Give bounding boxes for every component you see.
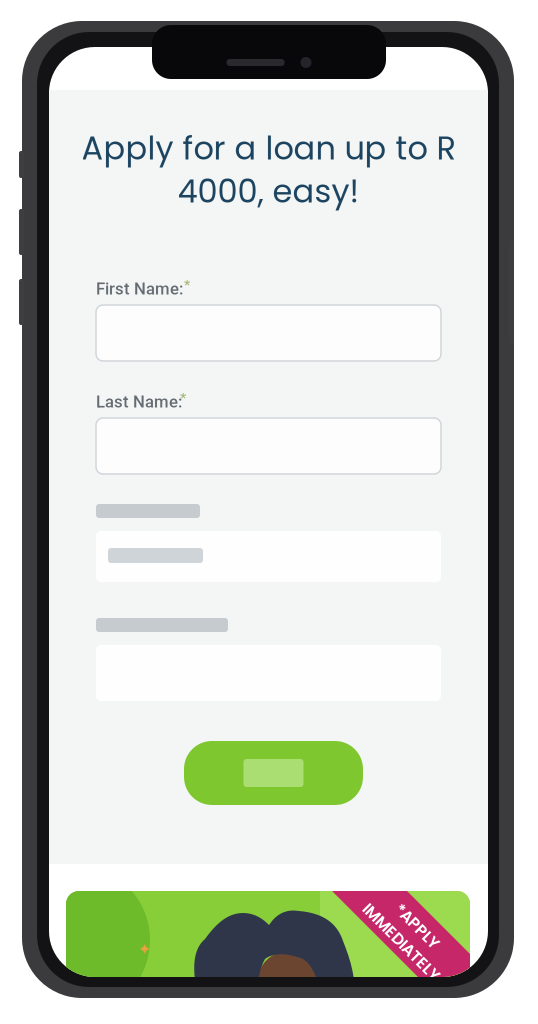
staticText: First Name: [96,279,183,298]
staticText: * [180,390,186,407]
staticText: Apply for a loan up to R [81,126,455,171]
staticText: *APPLY IMMEDIATELY [358,912,460,956]
staticText: Last Name: [96,392,182,411]
button[interactable] [184,741,363,805]
button[interactable]: Apply immediately promo [66,891,470,1001]
staticText: * [184,277,190,294]
staticText: 4000, easy! [177,169,359,214]
staticText: ✦ [138,940,151,959]
